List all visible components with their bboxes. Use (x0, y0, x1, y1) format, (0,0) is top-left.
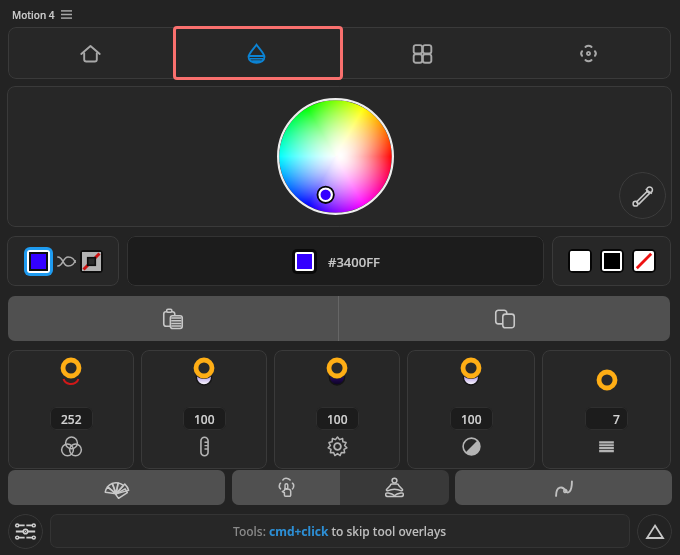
staticText: #3400FF (328, 253, 380, 271)
button[interactable]: Move (505, 27, 671, 79)
staticText: 100 (327, 411, 348, 427)
staticText: 100 (461, 411, 482, 427)
button[interactable]: Settings (8, 514, 43, 549)
button[interactable]: Paste (8, 296, 338, 341)
button[interactable]: Menu (60, 7, 72, 22)
button[interactable]: 100 (274, 350, 400, 469)
staticText: 100 (194, 411, 215, 427)
button[interactable]: #3400FF (127, 236, 544, 286)
button[interactable]: Eyedropper (619, 172, 666, 219)
button[interactable]: Transparent (634, 251, 654, 271)
staticText: 252 (61, 411, 82, 427)
button[interactable]: Play (637, 514, 672, 549)
button[interactable]: Tap tool (232, 470, 340, 505)
staticText: Motion 4 (12, 8, 55, 22)
button[interactable]: Foreground color (27, 250, 50, 273)
button[interactable]: Grid (339, 27, 505, 79)
button[interactable]: Stamp tool (340, 470, 449, 505)
button[interactable]: Palette (8, 470, 225, 505)
button[interactable]: Color (173, 27, 339, 79)
staticText: 7 (613, 411, 620, 427)
button[interactable]: Copy (339, 296, 670, 341)
button[interactable]: Black (602, 251, 622, 271)
button[interactable]: Curve (455, 470, 672, 505)
staticText: Tools: cmd+click to skip tool overlays (233, 523, 447, 539)
button[interactable]: 100 (141, 350, 267, 469)
button[interactable]: 100 (407, 350, 535, 469)
button[interactable]: 7 (542, 350, 671, 469)
button[interactable]: Swap colors (57, 252, 76, 271)
button[interactable]: Home (8, 27, 173, 79)
button[interactable]: White (570, 251, 590, 271)
button[interactable]: No color (82, 252, 101, 271)
button[interactable]: Tools: cmd+click to skip tool overlays (50, 514, 630, 548)
button[interactable]: 252 (8, 350, 134, 469)
